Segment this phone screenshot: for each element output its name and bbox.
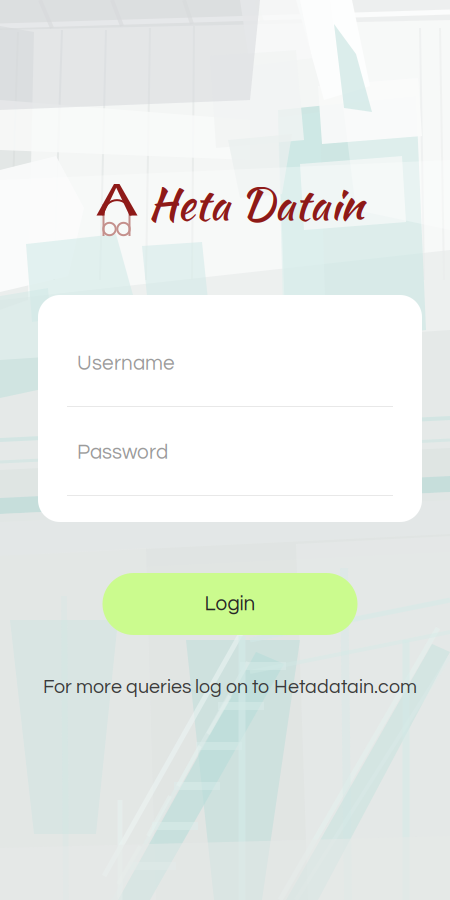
- staticText: Username: [77, 353, 175, 374]
- staticText: For more queries log on to Hetadatain.co…: [43, 677, 417, 697]
- button[interactable]: Login: [102, 573, 357, 635]
- button[interactable]: Password: [67, 407, 393, 495]
- button[interactable]: Username: [67, 295, 393, 406]
- staticText: Login: [204, 593, 255, 615]
- staticText: Heta Datain: [148, 172, 364, 236]
- staticText: Password: [77, 442, 168, 463]
